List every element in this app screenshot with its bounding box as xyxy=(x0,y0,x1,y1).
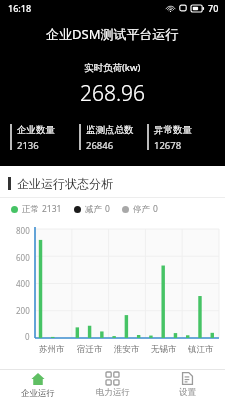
staticText: 0 xyxy=(25,331,30,342)
staticText: 12678 xyxy=(154,139,182,152)
button[interactable]: 减产 xyxy=(74,203,110,215)
staticText: 正常 xyxy=(22,204,39,215)
staticText: 400 xyxy=(16,278,30,289)
staticText: 2136 xyxy=(17,139,39,152)
staticText: 600 xyxy=(16,252,30,263)
staticText: 镇江市 xyxy=(188,344,214,355)
button[interactable]: 监测点总数 xyxy=(79,124,147,152)
staticText: 268.96 xyxy=(80,79,146,108)
staticText: 苏州市 xyxy=(39,344,65,355)
staticText: 2131 xyxy=(42,203,62,215)
button[interactable]: 电力运行 xyxy=(75,370,150,400)
staticText: 企业运行 xyxy=(21,388,55,399)
button[interactable]: 正常 xyxy=(11,203,62,215)
staticText: 26846 xyxy=(86,139,114,152)
staticText: 企业数量 xyxy=(17,124,55,136)
staticText: 70 xyxy=(208,2,219,14)
staticText: 停产 xyxy=(133,204,150,215)
staticText: 宿迁市 xyxy=(77,344,103,355)
staticText: 200 xyxy=(16,305,30,316)
button[interactable]: 异常数量 xyxy=(147,124,215,152)
staticText: 企业DSM测试平台运行 xyxy=(46,25,179,43)
button[interactable]: 企业数量 xyxy=(10,124,79,152)
staticText: 0 xyxy=(105,203,110,215)
staticText: 监测点总数 xyxy=(86,124,134,136)
staticText: 800 xyxy=(16,225,30,236)
button[interactable]: 企业运行 xyxy=(0,370,75,400)
staticText: 电力运行 xyxy=(96,387,130,398)
staticText: 企业运行状态分析 xyxy=(17,176,113,191)
staticText: 减产 xyxy=(85,204,102,215)
staticText: 淮安市 xyxy=(114,344,140,355)
staticText: 无锡市 xyxy=(151,344,177,355)
staticText: 16:18 xyxy=(8,2,32,14)
button[interactable]: 停产 xyxy=(122,203,158,215)
button[interactable]: 设置 xyxy=(150,370,225,400)
staticText: 0 xyxy=(153,203,158,215)
staticText: 设置 xyxy=(179,387,196,398)
staticText: 异常数量 xyxy=(154,124,192,136)
staticText: 实时负荷(kw) xyxy=(84,61,141,74)
